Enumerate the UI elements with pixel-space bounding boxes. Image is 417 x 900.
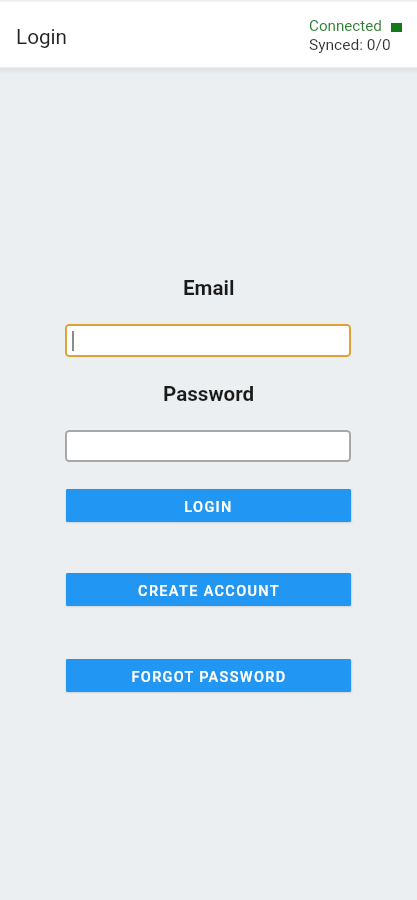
staticText: Connected [309, 17, 382, 35]
staticText: CREATE ACCOUNT [138, 583, 280, 600]
staticText: FORGOT PASSWORD [131, 669, 287, 686]
staticText: Email [183, 276, 235, 300]
staticText: Synced: 0/0 [309, 36, 391, 54]
staticText: LOGIN [184, 499, 233, 516]
staticText: Password [163, 382, 255, 406]
button[interactable]: FORGOT PASSWORD [66, 659, 351, 692]
button[interactable]: Password input field [65, 430, 351, 462]
button[interactable]: CREATE ACCOUNT [66, 573, 351, 606]
button[interactable]: Email input field [65, 324, 351, 357]
button[interactable]: LOGIN [66, 489, 351, 522]
staticText: Login [16, 25, 68, 49]
